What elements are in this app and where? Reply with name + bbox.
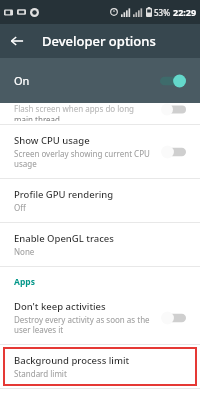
staticText: None	[14, 246, 35, 257]
button[interactable]: Enable OpenGL traces	[0, 223, 200, 266]
button[interactable]: Flash screen when apps do long operation…	[0, 103, 200, 124]
button[interactable]: On	[0, 58, 200, 103]
button[interactable]: Back	[0, 24, 34, 58]
staticText: Developer options	[42, 32, 156, 50]
button[interactable]: Don't keep activities	[0, 291, 200, 344]
staticText: Off	[14, 202, 26, 213]
staticText: Apps	[14, 276, 35, 288]
staticText: 22:29	[173, 6, 197, 18]
button[interactable]: Show CPU usage	[0, 125, 200, 178]
staticText: Destroy every activity as soon as the us…	[14, 314, 154, 335]
staticText: main thread	[14, 114, 60, 121]
staticText: Flash screen when apps do long operation…	[14, 103, 160, 114]
staticText: Background process limit	[14, 354, 130, 367]
staticText: On	[14, 73, 30, 88]
staticText: Screen overlay showing current CPU usage	[14, 148, 154, 169]
staticText: Profile GPU rendering	[14, 188, 114, 201]
staticText: Don't keep activities	[14, 300, 106, 313]
button[interactable]: Background process limit	[3, 347, 197, 386]
staticText: Standard limit	[14, 368, 67, 379]
staticText: Show CPU usage	[14, 134, 90, 147]
staticText: Enable OpenGL traces	[14, 232, 114, 245]
button[interactable]: Profile GPU rendering	[0, 179, 200, 222]
staticText: 53%	[154, 7, 170, 18]
